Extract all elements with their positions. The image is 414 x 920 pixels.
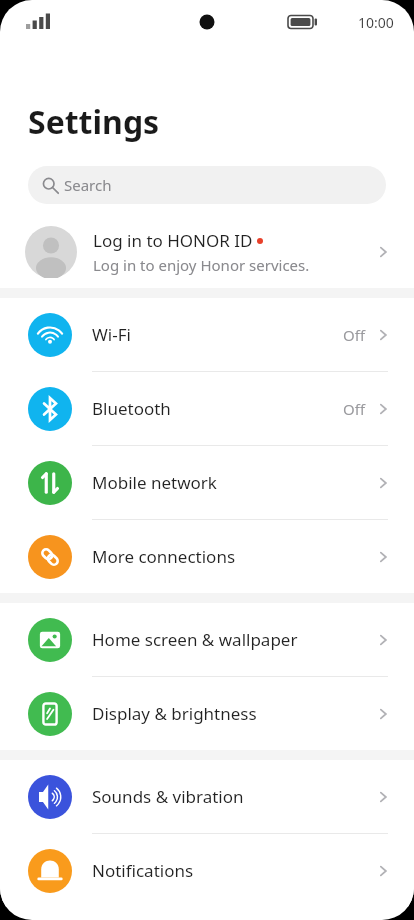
staticText: Notifications xyxy=(92,859,374,882)
staticText: Off xyxy=(343,399,366,419)
button[interactable]: More connections xyxy=(0,520,414,593)
other: More connections xyxy=(28,535,72,579)
button[interactable]: Home screen & wallpaper xyxy=(0,603,414,676)
button[interactable]: Search xyxy=(28,166,386,204)
staticText: 10:00 xyxy=(358,13,394,32)
button[interactable]: Log in to HONOR ID xyxy=(0,216,414,288)
staticText: Wi-Fi xyxy=(92,323,343,346)
other: Mobile network xyxy=(28,461,72,505)
staticText: Settings xyxy=(28,100,160,144)
staticText: More connections xyxy=(92,545,374,568)
staticText: Bluetooth xyxy=(92,397,343,420)
button[interactable]: Notifications xyxy=(0,834,414,907)
button[interactable]: Display & brightness xyxy=(0,677,414,750)
staticText: Mobile network xyxy=(92,471,374,494)
other: Display & brightness xyxy=(28,692,72,736)
staticText: Home screen & wallpaper xyxy=(92,628,374,651)
other: Wi-Fi xyxy=(28,313,72,357)
button[interactable]: Wi-Fi xyxy=(0,298,414,371)
staticText: Sounds & vibration xyxy=(92,785,374,808)
button[interactable]: Bluetooth xyxy=(0,372,414,445)
staticText: Search xyxy=(64,175,112,195)
staticText: Off xyxy=(343,325,366,345)
other: Home screen & wallpaper xyxy=(28,618,72,662)
staticText: Log in to enjoy Honor services. xyxy=(93,255,310,275)
staticText: Display & brightness xyxy=(92,702,374,725)
staticText: Log in to HONOR ID xyxy=(93,229,253,252)
other: Sounds & vibration xyxy=(28,775,72,819)
other: Bluetooth xyxy=(28,387,72,431)
button[interactable]: Mobile network xyxy=(0,446,414,519)
other: Notifications xyxy=(28,849,72,893)
button[interactable]: Sounds & vibration xyxy=(0,760,414,833)
